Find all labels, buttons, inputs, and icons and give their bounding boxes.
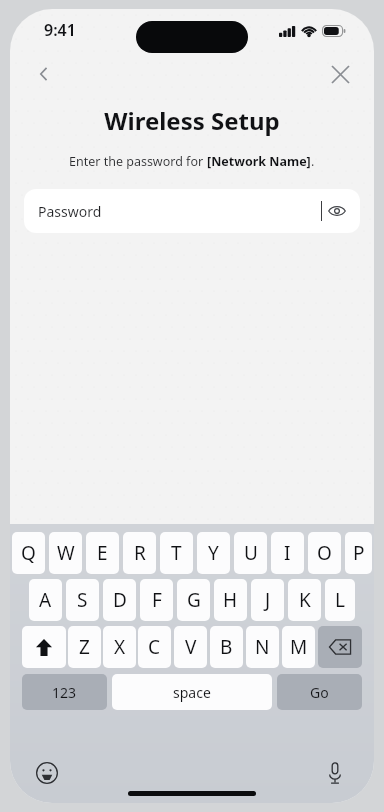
button[interactable]: E (86, 532, 119, 574)
staticText: G (187, 587, 201, 613)
staticText: L (335, 587, 345, 613)
staticText: D (113, 587, 127, 613)
button[interactable]: P (345, 532, 372, 574)
button[interactable]: Emoji (30, 756, 64, 790)
staticText: Enter the password for (69, 153, 207, 170)
button[interactable]: Shift (22, 626, 66, 668)
staticText: [Network Name] (207, 153, 311, 170)
staticText: X (114, 634, 126, 660)
staticText: Q (21, 540, 36, 566)
button[interactable]: Go (277, 674, 362, 710)
button[interactable]: 123 (22, 674, 107, 710)
button[interactable]: I (271, 532, 304, 574)
button[interactable]: D (103, 579, 136, 621)
staticText: Y (208, 540, 219, 566)
button[interactable]: Z (68, 626, 101, 668)
staticText: Go (310, 683, 329, 702)
button[interactable]: R (123, 532, 156, 574)
staticText: M (290, 634, 308, 660)
button[interactable]: Y (197, 532, 230, 574)
staticText: T (171, 540, 182, 566)
button[interactable]: Password (24, 189, 360, 233)
button[interactable]: T (160, 532, 193, 574)
button[interactable]: Q (12, 532, 45, 574)
button[interactable]: J (251, 579, 284, 621)
button[interactable]: L (325, 579, 355, 621)
button[interactable]: H (214, 579, 247, 621)
button[interactable]: W (49, 532, 82, 574)
button[interactable]: A (29, 579, 62, 621)
staticText: Password (38, 202, 102, 221)
staticText: H (223, 587, 238, 613)
button[interactable]: S (66, 579, 99, 621)
staticText: 9:41 (44, 19, 76, 41)
staticText: space (173, 683, 211, 702)
button[interactable]: Dictation (318, 756, 352, 790)
button[interactable]: U (234, 532, 267, 574)
staticText: 123 (52, 683, 77, 702)
button[interactable]: O (308, 532, 341, 574)
button[interactable]: C (138, 626, 171, 668)
staticText: C (148, 634, 161, 660)
staticText: . (311, 153, 315, 170)
button[interactable]: Back (24, 54, 64, 94)
staticText: R (134, 540, 146, 566)
staticText: Wireless Setup (10, 104, 374, 137)
staticText: I (284, 540, 291, 566)
button[interactable]: B (210, 626, 243, 668)
staticText: S (77, 587, 88, 613)
staticText: N (255, 634, 270, 660)
button[interactable]: G (177, 579, 210, 621)
staticText: O (317, 540, 332, 566)
staticText: F (152, 587, 162, 613)
staticText: B (220, 634, 233, 660)
staticText: U (244, 540, 258, 566)
staticText: A (39, 587, 52, 613)
button[interactable]: Show password (322, 196, 352, 226)
staticText: P (353, 540, 365, 566)
button[interactable]: X (103, 626, 136, 668)
button[interactable]: K (288, 579, 321, 621)
button[interactable]: F (140, 579, 173, 621)
button[interactable]: Close (320, 54, 360, 94)
button[interactable]: N (246, 626, 279, 668)
staticText: W (57, 540, 75, 566)
button[interactable]: space (112, 674, 272, 710)
staticText: Z (79, 634, 90, 660)
button[interactable]: V (174, 626, 207, 668)
staticText: J (265, 587, 271, 613)
button[interactable]: Backspace (318, 626, 362, 668)
button[interactable]: M (282, 626, 315, 668)
staticText: E (97, 540, 108, 566)
staticText: V (185, 634, 197, 660)
staticText: K (299, 587, 311, 613)
